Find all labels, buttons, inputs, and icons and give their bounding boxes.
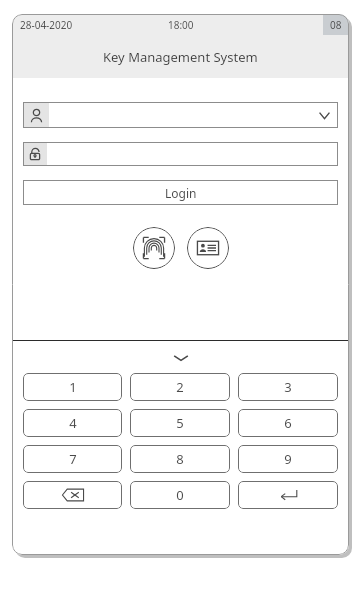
button[interactable]: 1 <box>23 373 122 401</box>
button[interactable]: Fingerprint login <box>133 227 175 269</box>
button[interactable]: ID card login <box>187 227 229 269</box>
staticText: 8 <box>176 450 184 468</box>
button[interactable] <box>23 102 338 128</box>
staticText: 3 <box>284 378 292 396</box>
staticText: 18:00 <box>168 18 194 32</box>
staticText: 9 <box>284 450 292 468</box>
staticText: 1 <box>69 378 77 396</box>
button[interactable]: 3 <box>238 373 338 401</box>
button[interactable]: 0 <box>130 481 230 509</box>
button[interactable]: 9 <box>238 445 338 473</box>
button[interactable]: 8 <box>130 445 230 473</box>
button[interactable]: Collapse keypad <box>23 350 338 366</box>
button[interactable]: 2 <box>130 373 230 401</box>
staticText: Login <box>165 185 197 201</box>
staticText: 4 <box>69 414 77 432</box>
staticText: 2 <box>176 378 184 396</box>
staticText: Key Management System <box>103 48 258 66</box>
staticText: 28-04-2020 <box>20 18 73 32</box>
staticText: 0 <box>176 486 184 504</box>
staticText: 08 <box>330 18 342 32</box>
button[interactable] <box>23 142 338 166</box>
staticText: 7 <box>69 450 77 468</box>
staticText: 6 <box>284 414 292 432</box>
button[interactable]: Login <box>23 180 338 205</box>
button[interactable]: 5 <box>130 409 230 437</box>
staticText: 5 <box>176 414 184 432</box>
button[interactable]: Enter <box>238 481 338 509</box>
button[interactable]: Backspace <box>23 481 122 509</box>
button[interactable]: 7 <box>23 445 122 473</box>
button[interactable]: 4 <box>23 409 122 437</box>
button[interactable]: 6 <box>238 409 338 437</box>
